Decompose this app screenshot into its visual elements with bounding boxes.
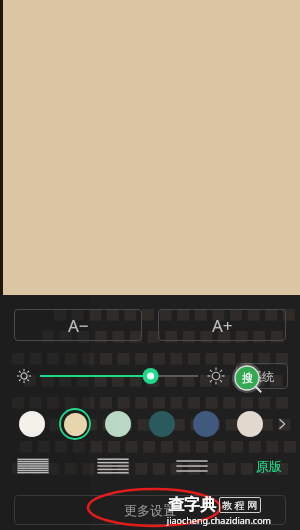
button[interactable]: 背景颜色 [16, 408, 48, 440]
staticText: 教 程 网 [222, 498, 258, 512]
button[interactable]: 行间距 [175, 456, 209, 476]
staticText: A+ [212, 314, 233, 337]
staticText: 系统 [250, 369, 274, 384]
button[interactable]: A− [14, 309, 142, 341]
button[interactable]: 行间距 [96, 456, 130, 476]
staticText: 查字典 [168, 495, 216, 515]
staticText: 更多设置 [124, 502, 176, 518]
button[interactable]: 行间距 [16, 456, 50, 476]
button[interactable]: 背景颜色 [234, 408, 266, 440]
other: 亮度 [204, 364, 228, 388]
button[interactable]: 搜索 [232, 363, 262, 393]
button[interactable]: A+ [158, 309, 286, 341]
button[interactable]: 系统 [236, 363, 288, 389]
staticText: jiaocheng.chazidian.com [166, 514, 271, 526]
button[interactable]: More colours [272, 414, 292, 434]
staticText: A− [68, 314, 89, 337]
staticText: 原版 [256, 458, 282, 474]
staticText: 搜 [242, 371, 253, 385]
other: 亮度 [14, 366, 34, 386]
button[interactable]: 更多设置 [14, 495, 286, 525]
button[interactable]: 背景颜色 [59, 408, 91, 440]
button[interactable]: 背景颜色 [102, 408, 134, 440]
button[interactable]: 亮度调节 [40, 363, 198, 389]
button[interactable]: 背景颜色 [190, 408, 222, 440]
button[interactable]: 原版 [254, 458, 284, 474]
button[interactable]: 背景颜色 [146, 408, 178, 440]
